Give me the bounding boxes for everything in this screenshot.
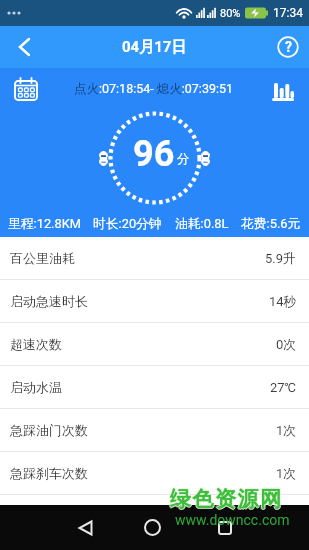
- staticText: www.downcc.com: [175, 512, 290, 528]
- button[interactable]: [13, 76, 39, 102]
- staticText: 96: [133, 133, 175, 175]
- staticText: 点火:07:18:54- 熄火:07:39:51: [74, 81, 234, 97]
- button[interactable]: [135, 505, 169, 550]
- staticText: 0次: [276, 336, 297, 352]
- button[interactable]: 急踩刹车次数: [0, 452, 309, 494]
- staticText: 绿色资源网: [170, 486, 283, 512]
- button[interactable]: 急踩油门次数: [0, 409, 309, 451]
- button[interactable]: [8, 31, 40, 63]
- staticText: 17:34: [273, 6, 303, 20]
- staticText: 1次: [276, 465, 297, 481]
- staticText: 27℃: [270, 380, 297, 395]
- button[interactable]: ?: [272, 31, 304, 63]
- staticText: 百公里油耗: [10, 250, 75, 266]
- staticText: 80%: [220, 7, 241, 20]
- button[interactable]: 超速次数: [0, 323, 309, 365]
- staticText: 超速次数: [10, 336, 62, 352]
- staticText: 急踩油门次数: [10, 422, 88, 438]
- staticText: 花费:5.6元: [241, 216, 301, 232]
- staticText: 14秒: [269, 293, 297, 309]
- button[interactable]: [68, 505, 102, 550]
- staticText: 急踩刹车次数: [10, 465, 88, 481]
- button[interactable]: 百公里油耗: [0, 237, 309, 279]
- button[interactable]: 启动急速时长: [0, 280, 309, 322]
- staticText: 启动水温: [10, 379, 62, 395]
- button[interactable]: [270, 76, 296, 102]
- staticText: 油耗:0.8L: [175, 216, 229, 232]
- staticText: 5.9升: [265, 250, 297, 266]
- staticText: 时长:20分钟: [93, 216, 162, 232]
- staticText: 04月17日: [122, 38, 187, 57]
- button[interactable]: 启动水温: [0, 366, 309, 408]
- staticText: 启动急速时长: [10, 293, 88, 309]
- staticText: 绿色资源网: [169, 486, 282, 512]
- button[interactable]: [208, 505, 242, 550]
- staticText: 1次: [276, 422, 297, 438]
- staticText: 绿色资源网: [170, 485, 283, 511]
- staticText: ?: [285, 39, 292, 55]
- staticText: 绿色资源网: [170, 487, 283, 513]
- staticText: 分: [177, 151, 190, 167]
- staticText: 绿色资源网: [171, 486, 284, 512]
- staticText: 里程:12.8KM: [8, 216, 81, 232]
